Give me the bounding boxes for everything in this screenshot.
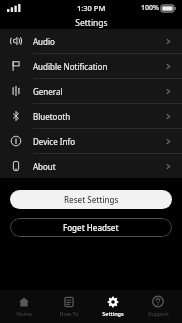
staticText: About <box>33 161 165 172</box>
button[interactable]: Bluetooth <box>0 104 182 128</box>
button[interactable]: General <box>0 79 182 103</box>
staticText: Bluetooth <box>33 111 165 122</box>
staticText: Foget Headset <box>63 222 119 233</box>
button[interactable]: Foget Headset <box>10 218 172 237</box>
button[interactable]: Reset Settings <box>10 190 172 209</box>
staticText: How To <box>59 310 79 317</box>
staticText: Device Info <box>33 136 165 147</box>
button[interactable]: How To <box>48 296 90 317</box>
button[interactable]: Settings <box>92 296 134 317</box>
staticText: General <box>33 86 165 97</box>
staticText: 100% <box>141 3 159 13</box>
staticText: Settings <box>102 310 124 317</box>
button[interactable]: About <box>0 154 182 178</box>
staticText: Settings <box>75 17 108 29</box>
staticText: 1:30 PM <box>77 3 106 13</box>
button[interactable]: Home <box>3 296 45 317</box>
staticText: Reset Settings <box>64 194 119 205</box>
staticText: Audible Notification <box>33 61 165 72</box>
button[interactable]: Support <box>137 296 179 317</box>
staticText: Support <box>148 310 169 317</box>
button[interactable]: Audio <box>0 29 182 53</box>
staticText: Audio <box>33 36 165 47</box>
staticText: Home <box>16 310 32 317</box>
button[interactable]: Audible Notification <box>0 54 182 78</box>
button[interactable]: Device Info <box>0 129 182 153</box>
